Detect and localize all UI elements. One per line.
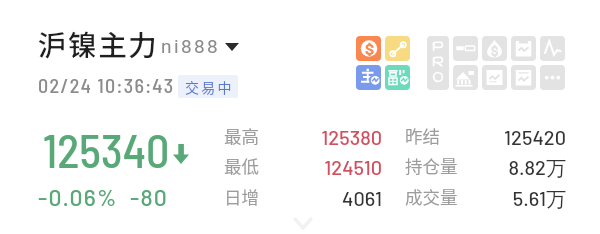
button[interactable]: Chart [482,65,507,90]
staticText: $ [491,43,499,59]
button[interactable]: Price marker [356,36,381,61]
staticText: 125340 [43,122,170,177]
button[interactable]: Price alert [482,36,507,61]
staticText: 沪镍主力 [38,28,159,62]
button[interactable]: Layout [453,36,478,61]
button[interactable]: Trend line tool [385,36,410,61]
staticText: 124510 [252,155,382,179]
button[interactable]: Main indicator [356,65,381,90]
staticText: 日增 [224,184,259,209]
button[interactable]: 交易中 [178,75,238,98]
button[interactable]: Volume [453,65,478,90]
staticText: 最低 [224,153,259,178]
staticText: 125420 [436,125,566,149]
staticText: 125380 [252,125,382,149]
button[interactable]: Trend report [511,65,536,90]
button[interactable]: Expand details [288,214,318,232]
staticText: 02/24 10:36:43 [38,73,175,97]
staticText: 持仓量 [405,153,458,178]
staticText: 5.61万 [436,186,566,212]
staticText: $ [365,39,375,58]
staticText: -80 [130,183,168,211]
button[interactable]: Report [511,36,536,61]
staticText: 8.82万 [436,155,566,181]
staticText: ni888 [161,35,221,57]
staticText: 最高 [224,123,259,148]
staticText: 交易中 [185,77,234,97]
button[interactable]: PRO tools [427,36,449,90]
staticText: -0.06% [38,183,118,211]
button[interactable]: More [540,65,565,90]
staticText: 4061 [252,186,382,210]
staticText: 成交量 [405,184,458,209]
button[interactable]: Sub indicator [385,65,410,90]
button[interactable]: Choose contract [224,41,240,53]
button[interactable]: Volatility [540,36,565,61]
staticText: 昨结 [405,123,440,148]
